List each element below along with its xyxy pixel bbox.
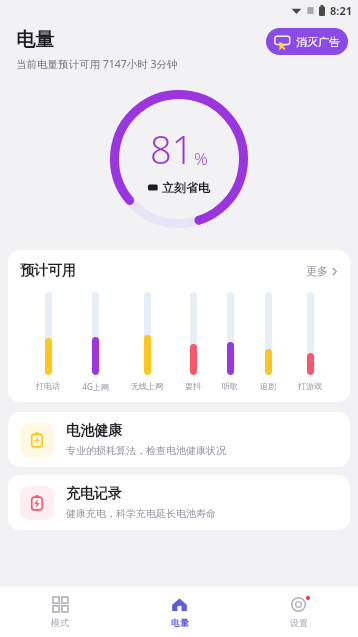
staticText: 打电话 xyxy=(36,381,60,391)
staticText: 电量 xyxy=(171,617,189,628)
staticText: 81 xyxy=(150,123,194,175)
staticText: 充电记录 xyxy=(66,485,122,503)
staticText: 打游戏 xyxy=(298,381,322,391)
button[interactable]: 电池健康 xyxy=(8,412,350,467)
staticText: 健康充电，科学充电延长电池寿命 xyxy=(66,507,216,520)
staticText: 专业的损耗算法，检查电池健康状况 xyxy=(66,444,226,457)
button[interactable]: 模式 xyxy=(0,587,120,637)
button[interactable]: 立刻省电 xyxy=(148,180,210,195)
staticText: 无线上网 xyxy=(131,381,163,391)
staticText: 耍抖 xyxy=(185,381,201,391)
button[interactable]: 更多 xyxy=(306,264,338,278)
staticText: 4G上网 xyxy=(82,381,109,392)
staticText: 更多 xyxy=(306,264,328,278)
staticText: % xyxy=(194,147,208,170)
staticText: 立刻省电 xyxy=(162,180,210,195)
staticText: 电量 xyxy=(16,28,54,52)
staticText: 追剧 xyxy=(260,381,276,391)
staticText: 消灭广告 xyxy=(296,35,340,49)
button[interactable]: 电量 xyxy=(120,587,239,637)
button[interactable]: 消灭广告 xyxy=(266,28,348,55)
staticText: 听歌 xyxy=(222,381,238,391)
staticText: 电池健康 xyxy=(66,422,122,440)
button[interactable]: 充电记录 xyxy=(8,475,350,530)
button[interactable]: 设置 xyxy=(239,587,358,637)
staticText: 模式 xyxy=(51,617,69,628)
staticText: 当前电量预计可用 7147小时 3分钟 xyxy=(16,57,178,71)
staticText: 预计可用 xyxy=(20,262,76,280)
staticText: 设置 xyxy=(290,617,308,628)
staticText: 8:21 xyxy=(330,3,352,18)
